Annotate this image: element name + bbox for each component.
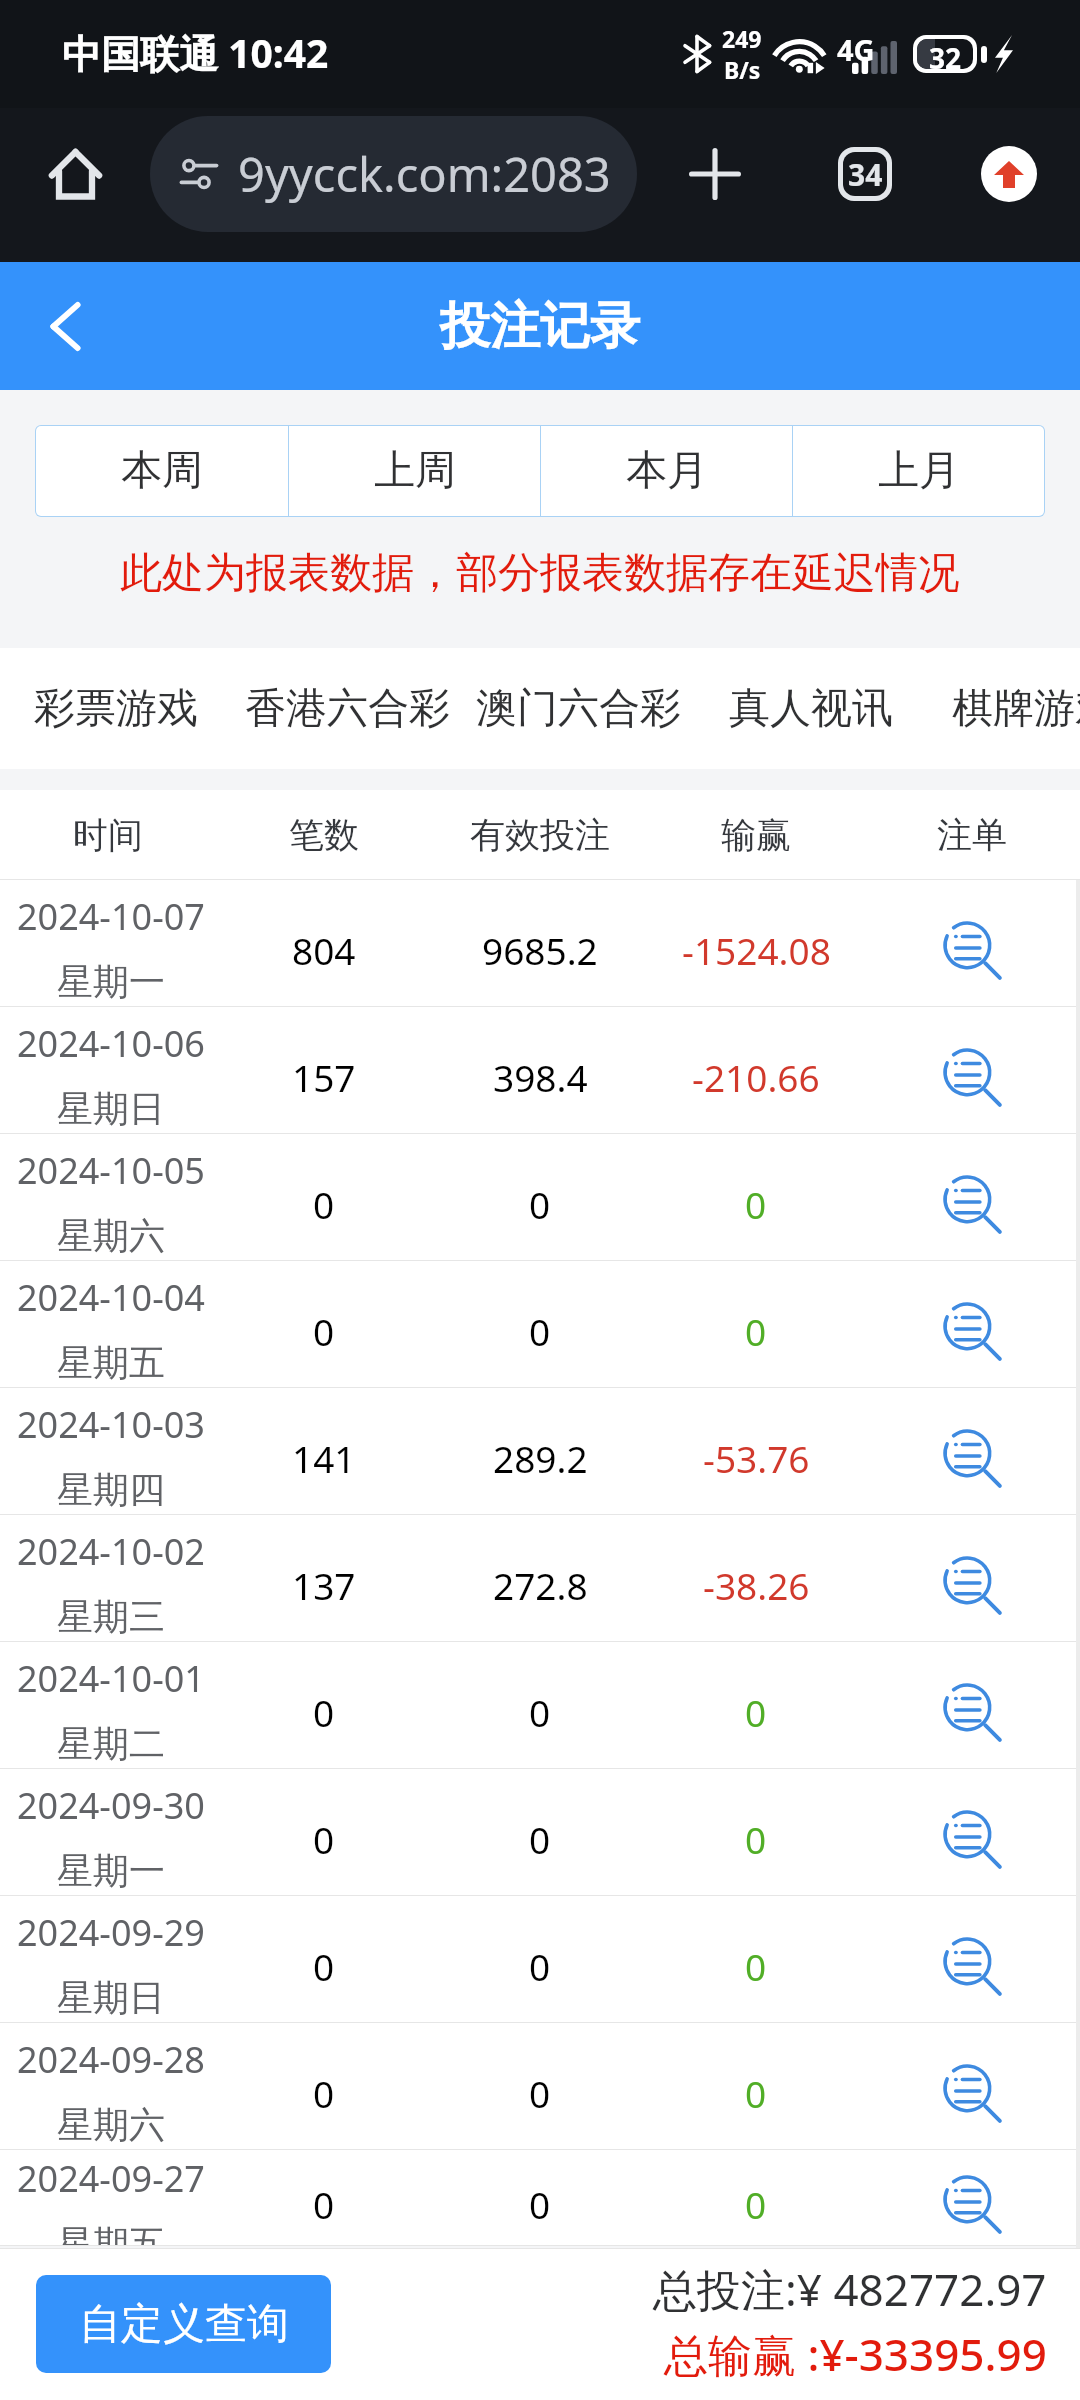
staticText: 2024-10-04 <box>17 1273 205 1322</box>
staticText: 2024-10-07 <box>17 892 205 941</box>
staticText: 本周 <box>121 445 203 497</box>
staticText: 0 <box>745 2068 767 2118</box>
staticText: 投注记录 <box>440 295 640 358</box>
staticText: 0 <box>529 1814 551 1864</box>
staticText: -210.66 <box>692 1052 820 1102</box>
button[interactable]: Scroll to top <box>938 97 1080 251</box>
staticText: 星期四 <box>57 1467 165 1512</box>
button[interactable]: 2024-10-02 <box>0 1515 1080 1642</box>
staticText: 2024-09-27 <box>17 2154 205 2203</box>
button[interactable]: Home <box>0 97 150 251</box>
button[interactable]: 查看注单 <box>932 1672 1012 1752</box>
staticText: 澳门六合彩 <box>476 683 681 735</box>
button[interactable]: 彩票游戏 <box>34 683 198 735</box>
staticText: 中国联通 10:42 <box>62 26 329 79</box>
staticText: 星期日 <box>57 1975 165 2020</box>
staticText: 32 <box>929 39 962 69</box>
button[interactable]: 查看注单 <box>932 910 1012 990</box>
staticText: 输赢 <box>721 813 791 857</box>
staticText: 上周 <box>374 445 456 497</box>
staticText: 2024-09-28 <box>17 2035 205 2084</box>
staticText: 总输赢 :¥-33395.99 <box>664 2324 1047 2384</box>
staticText: 289.2 <box>493 1433 588 1483</box>
staticText: 2024-09-29 <box>17 1908 205 1957</box>
staticText: 249 <box>722 23 762 54</box>
button[interactable]: 澳门六合彩 <box>476 683 681 735</box>
staticText: B/s <box>724 54 761 85</box>
staticText: 2024-10-06 <box>17 1019 205 1068</box>
button[interactable]: 查看注单 <box>932 1037 1012 1117</box>
staticText: 香港六合彩 <box>245 683 450 735</box>
staticText: 0 <box>529 2068 551 2118</box>
button[interactable]: 查看注单 <box>932 2053 1012 2133</box>
staticText: 272.8 <box>493 1560 588 1610</box>
button[interactable]: 2024-10-07 <box>0 880 1080 1007</box>
staticText: 0 <box>313 1814 335 1864</box>
button[interactable]: 2024-10-01 <box>0 1642 1080 1769</box>
staticText: 141 <box>292 1433 356 1483</box>
staticText: -53.76 <box>703 1433 810 1483</box>
staticText: 0 <box>313 1179 335 1229</box>
staticText: 真人视讯 <box>729 683 893 735</box>
button[interactable]: 查看注单 <box>932 1291 1012 1371</box>
button[interactable]: 2024-09-30 <box>0 1769 1080 1896</box>
staticText: 9685.2 <box>482 925 598 975</box>
button[interactable]: 2024-10-03 <box>0 1388 1080 1515</box>
button[interactable]: 查看注单 <box>932 2164 1012 2244</box>
button[interactable]: Tabs <box>792 97 938 251</box>
staticText: 2024-10-02 <box>17 1527 205 1576</box>
button[interactable]: 2024-09-29 <box>0 1896 1080 2023</box>
staticText: 137 <box>292 1560 356 1610</box>
button[interactable]: 上月 <box>793 426 1044 516</box>
staticText: 804 <box>292 925 356 975</box>
staticText: 0 <box>313 1941 335 1991</box>
button[interactable]: 查看注单 <box>932 1545 1012 1625</box>
staticText: 星期一 <box>57 959 165 1004</box>
staticText: 本月 <box>626 445 708 497</box>
button[interactable]: 查看注单 <box>932 1164 1012 1244</box>
staticText: 2024-09-30 <box>17 1781 205 1830</box>
staticText: 注单 <box>937 813 1007 857</box>
button[interactable]: New tab <box>637 97 792 251</box>
staticText: -1524.08 <box>682 925 831 975</box>
staticText: 398.4 <box>493 1052 588 1102</box>
staticText: 0 <box>745 1687 767 1737</box>
button[interactable]: 2024-09-27 <box>0 2150 1080 2246</box>
button[interactable]: 2024-10-05 <box>0 1134 1080 1261</box>
staticText: 星期五 <box>57 2221 165 2246</box>
staticText: 时间 <box>73 813 143 857</box>
button[interactable]: 自定义查询 <box>36 2275 331 2373</box>
staticText: 2024-10-03 <box>17 1400 205 1449</box>
staticText: 星期二 <box>57 1721 165 1766</box>
button[interactable]: 2024-09-28 <box>0 2023 1080 2150</box>
button[interactable]: 查看注单 <box>932 1418 1012 1498</box>
button[interactable]: 本周 <box>36 426 288 516</box>
button[interactable]: 本月 <box>541 426 792 516</box>
button[interactable]: 上周 <box>289 426 540 516</box>
staticText: 此处为报表数据，部分报表数据存在延迟情况 <box>120 547 960 600</box>
button[interactable]: Back <box>0 262 130 390</box>
button[interactable]: 9yycck.com:2083 <box>150 116 637 232</box>
staticText: 星期一 <box>57 1848 165 1893</box>
button[interactable]: 香港六合彩 <box>245 683 450 735</box>
button[interactable]: 2024-10-04 <box>0 1261 1080 1388</box>
staticText: 0 <box>529 1306 551 1356</box>
staticText: 有效投注 <box>470 813 610 857</box>
button[interactable]: 2024-10-06 <box>0 1007 1080 1134</box>
staticText: 0 <box>745 1306 767 1356</box>
button[interactable]: 查看注单 <box>932 1799 1012 1879</box>
staticText: 0 <box>529 1941 551 1991</box>
staticText: 星期日 <box>57 1086 165 1131</box>
staticText: 棋牌游戏 <box>952 683 1080 735</box>
staticText: 9yycck.com:2083 <box>238 142 611 206</box>
staticText: 彩票游戏 <box>34 683 198 735</box>
staticText: 0 <box>313 1687 335 1737</box>
staticText: 0 <box>313 2068 335 2118</box>
staticText: -38.26 <box>703 1560 810 1610</box>
staticText: 星期六 <box>57 1213 165 1258</box>
staticText: 0 <box>745 2179 767 2229</box>
button[interactable]: 真人视讯 <box>729 683 893 735</box>
button[interactable]: 棋牌游戏 <box>952 683 1080 735</box>
button[interactable]: 查看注单 <box>932 1926 1012 2006</box>
staticText: 自定义查询 <box>79 2298 289 2351</box>
